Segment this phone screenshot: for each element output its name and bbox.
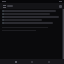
button[interactable]: Library [30,60,34,64]
button[interactable] [2,19,42,21]
button[interactable]: Search [59,5,62,8]
button[interactable]: Menu [2,4,6,8]
button[interactable]: Settings [47,60,51,64]
button[interactable]: Home [14,60,18,64]
button[interactable] [2,13,50,15]
